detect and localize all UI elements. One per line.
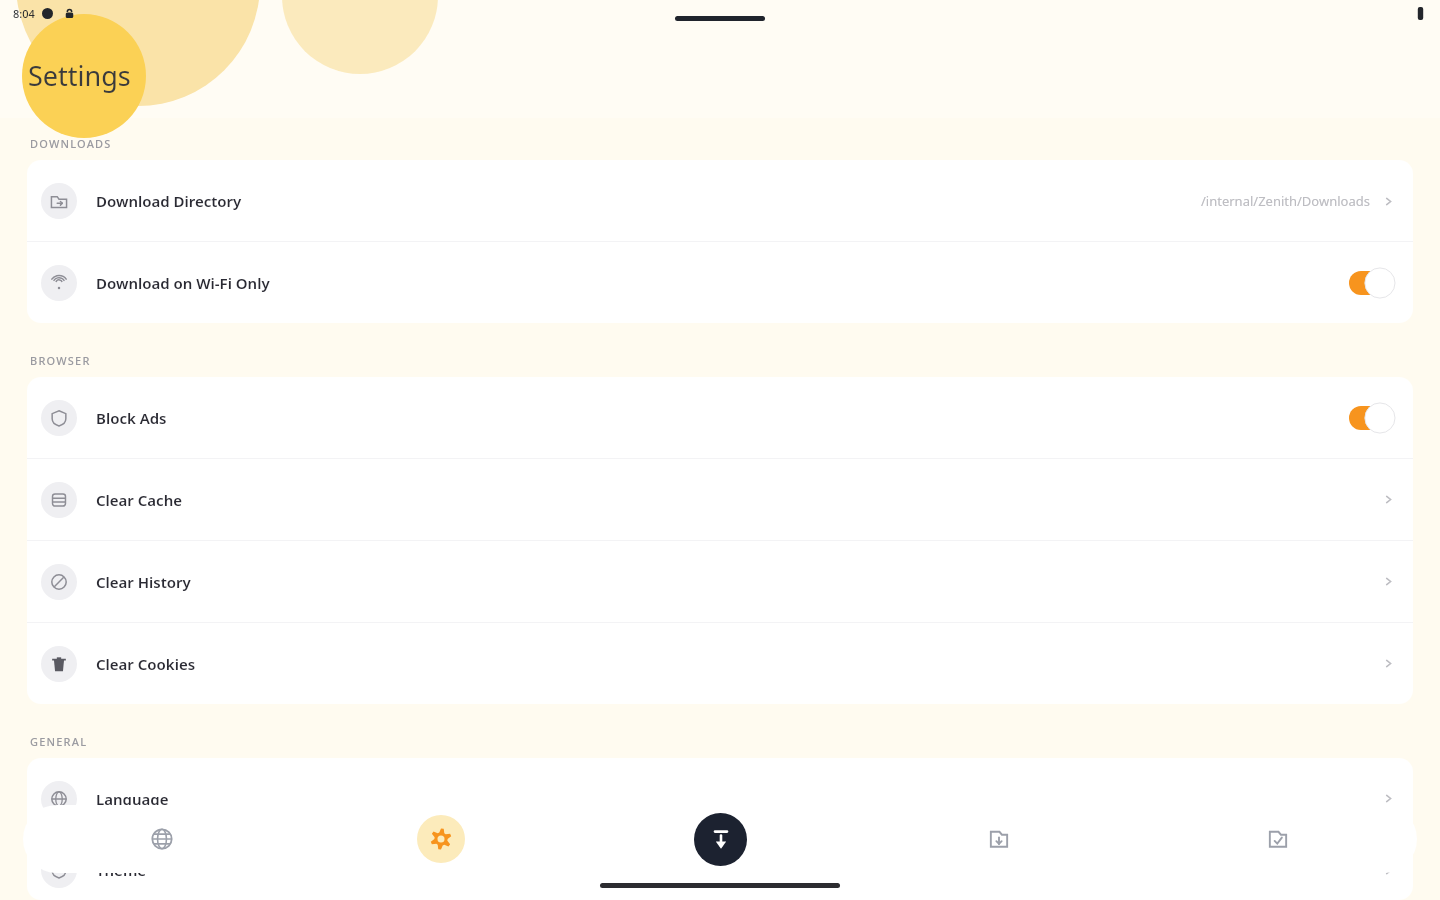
- staticText: Clear History: [96, 572, 191, 592]
- button[interactable]: Settings: [301, 805, 580, 873]
- staticText: BROWSER: [30, 353, 91, 368]
- staticText: Settings: [28, 57, 131, 94]
- staticText: Clear Cache: [96, 490, 182, 510]
- staticText: Language: [96, 789, 169, 809]
- staticText: DOWNLOADS: [30, 136, 112, 151]
- staticText: GENERAL: [30, 734, 88, 749]
- button[interactable]: Browser: [23, 805, 301, 873]
- button[interactable]: Downloads: [580, 805, 859, 873]
- button[interactable]: Block Ads: [27, 377, 1413, 458]
- staticText: 8:04: [13, 6, 35, 21]
- button[interactable]: Add folder: [859, 805, 1138, 873]
- button[interactable]: Downloads: [694, 813, 747, 866]
- button[interactable]: [1349, 270, 1395, 296]
- staticText: Download Directory: [96, 191, 242, 211]
- button[interactable]: Language: [27, 758, 1413, 839]
- button[interactable]: Download on Wi-Fi Only: [27, 242, 1413, 323]
- button[interactable]: Clear Cookies: [27, 623, 1413, 704]
- staticText: Block Ads: [96, 408, 167, 428]
- staticText: Clear Cookies: [96, 654, 196, 674]
- button[interactable]: Completed: [1138, 805, 1417, 873]
- button[interactable]: Theme: [27, 840, 1413, 900]
- button[interactable]: [1349, 405, 1395, 431]
- button[interactable]: Clear History: [27, 541, 1413, 622]
- staticText: /internal/Zenith/Downloads: [1201, 192, 1370, 210]
- staticText: Download on Wi-Fi Only: [96, 273, 270, 293]
- button[interactable]: Download Directory: [27, 160, 1413, 241]
- button[interactable]: Clear Cache: [27, 459, 1413, 540]
- staticText: Theme: [96, 860, 147, 880]
